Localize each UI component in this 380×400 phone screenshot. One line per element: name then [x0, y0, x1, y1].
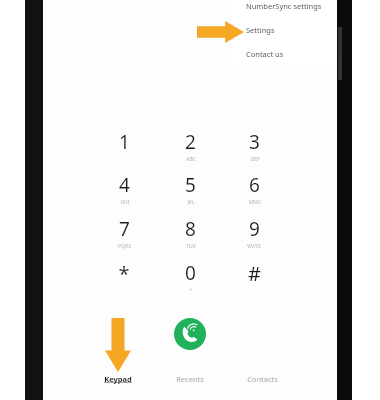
staticText: Contacts: [247, 374, 278, 384]
staticText: 9: [249, 216, 260, 242]
button[interactable]: 0: [162, 260, 218, 302]
staticText: PQRS: [118, 243, 131, 250]
staticText: 7: [119, 216, 130, 242]
button[interactable]: 4: [96, 172, 152, 214]
staticText: ABC: [186, 156, 196, 163]
other: Pointer to Keypad: [105, 318, 131, 372]
button[interactable]: Contact us: [232, 42, 337, 66]
button[interactable]: Settings: [232, 18, 337, 42]
button[interactable]: 1: [96, 129, 152, 171]
staticText: Settings: [246, 25, 275, 35]
staticText: 8: [185, 216, 196, 242]
button[interactable]: 9: [226, 216, 282, 258]
button[interactable]: #: [226, 260, 282, 302]
button[interactable]: *: [96, 260, 152, 302]
staticText: 3: [249, 129, 260, 155]
button[interactable]: Contacts: [230, 368, 294, 390]
staticText: 6: [249, 172, 260, 198]
button[interactable]: Wi-Fi call: [174, 318, 206, 350]
button[interactable]: 3: [226, 129, 282, 171]
button[interactable]: Keypad: [86, 368, 150, 390]
button[interactable]: 2: [162, 129, 218, 171]
staticText: NumberSync settings: [246, 1, 322, 11]
staticText: *: [118, 260, 130, 287]
other: Pointer to Settings: [197, 21, 244, 43]
staticText: Recents: [176, 374, 204, 384]
staticText: #: [248, 260, 261, 287]
staticText: GHI: [120, 199, 130, 206]
staticText: 4: [119, 172, 130, 198]
staticText: 5: [185, 172, 196, 198]
button[interactable]: 8: [162, 216, 218, 258]
button[interactable]: 6: [226, 172, 282, 214]
button[interactable]: Recents: [158, 368, 222, 390]
staticText: JKL: [187, 199, 195, 206]
staticText: 2: [185, 129, 196, 155]
staticText: DEF: [250, 156, 260, 163]
button[interactable]: 7: [96, 216, 152, 258]
staticText: MNO: [248, 199, 261, 206]
staticText: TUV: [186, 243, 196, 250]
staticText: Contact us: [246, 49, 284, 59]
button[interactable]: NumberSync settings: [232, 0, 337, 18]
staticText: 1: [119, 129, 130, 155]
staticText: WXYZ: [247, 243, 261, 250]
staticText: +: [189, 287, 192, 294]
button[interactable]: 5: [162, 172, 218, 214]
staticText: Keypad: [104, 374, 132, 384]
staticText: 0: [185, 260, 196, 286]
